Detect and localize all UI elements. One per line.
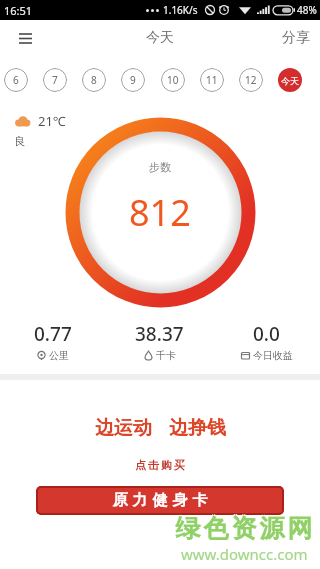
- staticText: www.downcc.com: [181, 544, 308, 564]
- button[interactable]: 9: [121, 68, 145, 92]
- staticText: 1.16K/s: [163, 3, 198, 17]
- button[interactable]: 7: [43, 68, 67, 92]
- staticText: 21℃: [38, 112, 66, 130]
- button[interactable]: 今天: [278, 68, 302, 92]
- staticText: 12: [245, 73, 257, 87]
- staticText: 边运动: [95, 416, 152, 440]
- staticText: 绿色资源网: [175, 514, 315, 545]
- button[interactable]: 8: [82, 68, 106, 92]
- staticText: 0.77: [34, 321, 72, 347]
- button[interactable]: 分享: [282, 29, 310, 47]
- staticText: 绿色资源网: [175, 512, 315, 543]
- staticText: 8: [91, 73, 97, 87]
- staticText: 6: [13, 73, 19, 87]
- staticText: 步数: [149, 160, 171, 174]
- staticText: 边挣钱: [169, 416, 226, 440]
- staticText: 今天: [281, 75, 299, 86]
- staticText: 千卡: [156, 349, 176, 362]
- staticText: 7: [52, 73, 58, 87]
- button[interactable]: 点击购买: [134, 458, 186, 472]
- staticText: 812: [129, 188, 191, 237]
- staticText: 良: [14, 134, 25, 148]
- button[interactable]: 10: [161, 68, 185, 92]
- staticText: 原力健身卡: [110, 491, 210, 510]
- staticText: 9: [130, 73, 136, 87]
- button[interactable]: 原力健身卡: [36, 486, 284, 515]
- staticText: 今日收益: [253, 349, 293, 362]
- staticText: 绿色资源网: [173, 512, 313, 543]
- staticText: 16:51: [4, 3, 33, 18]
- button[interactable]: 12: [239, 68, 263, 92]
- staticText: 48%: [297, 3, 317, 17]
- button[interactable]: [12, 25, 38, 51]
- staticText: 公里: [49, 349, 69, 362]
- staticText: 绿色资源网: [174, 513, 314, 544]
- staticText: 38.37: [135, 321, 184, 347]
- staticText: 今天: [146, 29, 174, 47]
- staticText: 10: [167, 73, 179, 87]
- staticText: 绿色资源网: [173, 514, 313, 545]
- button[interactable]: 边运动: [95, 416, 226, 440]
- staticText: 0.0: [253, 321, 280, 347]
- button[interactable]: 11: [200, 68, 224, 92]
- button[interactable]: 6: [4, 68, 28, 92]
- staticText: 11: [206, 73, 218, 87]
